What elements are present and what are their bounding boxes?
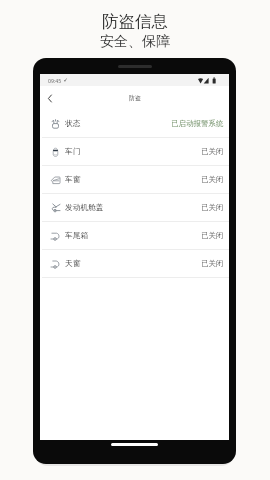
staticText: 已启动报警系统 [171,119,224,128]
staticText: 状态 [65,119,81,129]
button[interactable]: 车窗 [40,166,229,193]
staticText: 防盗信息 [102,11,168,32]
button[interactable]: 状态 [40,110,229,137]
button[interactable]: 天窗 [40,250,229,277]
staticText: 已关闭 [201,203,224,212]
staticText: 发动机舱盖 [65,203,104,213]
button[interactable]: 车尾箱 [40,222,229,249]
button[interactable]: 返回 [40,87,60,109]
staticText: 09:45 [48,77,62,84]
staticText: 安全、保障 [100,33,170,51]
staticText: 车门 [65,147,81,157]
staticText: 已关闭 [201,259,224,268]
staticText: 车窗 [65,175,81,185]
staticText: 车尾箱 [65,231,89,241]
button[interactable]: 车门 [40,138,229,165]
staticText: 天窗 [65,259,81,269]
staticText: 已关闭 [201,231,224,240]
staticText: 防盗 [129,94,141,102]
button[interactable]: 发动机舱盖 [40,194,229,221]
staticText: 已关闭 [201,175,224,184]
staticText: 已关闭 [201,147,224,156]
